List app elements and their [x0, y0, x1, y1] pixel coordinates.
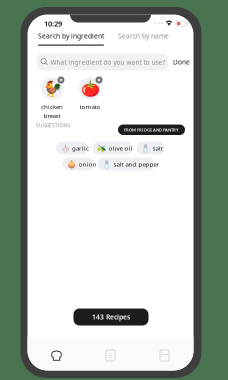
staticText: 🧂 [102, 160, 111, 168]
staticText: 143 Recipes [92, 312, 130, 322]
staticText: What ingredient do you want to use? [50, 58, 165, 66]
staticText: olive oil [108, 144, 132, 152]
staticText: Search by name [118, 31, 169, 41]
staticText: 🍅 [80, 79, 99, 97]
button[interactable]: 🧂 [99, 157, 157, 170]
button[interactable]: 🧂 [136, 141, 164, 154]
staticText: 🧅 [67, 160, 76, 168]
staticText: 🐓 [42, 79, 61, 97]
staticText: Search by ingredient [38, 31, 104, 41]
staticText: salt and pepper [113, 160, 159, 168]
button[interactable]: Recipes [51, 350, 62, 361]
button[interactable]: 🧄 [56, 141, 88, 154]
button[interactable]: 🐓 [39, 77, 69, 115]
staticText: breast [43, 111, 60, 120]
staticText: Done [173, 58, 190, 66]
button[interactable]: 🧅 [63, 157, 95, 170]
staticText: onion [78, 160, 96, 168]
staticText: tomato [79, 102, 100, 111]
staticText: chicken [41, 102, 63, 111]
button[interactable]: 🫒 [92, 141, 132, 154]
button[interactable]: FROM FRIDGE AND PANTRY [118, 124, 185, 135]
button[interactable]: Shopping list [105, 350, 115, 361]
staticText: 10:29 [44, 18, 62, 29]
button[interactable]: Search by name [113, 31, 173, 40]
staticText: 🫒 [97, 144, 106, 152]
button[interactable]: Search by ingredient [38, 31, 104, 40]
staticText: SUGGESTIONS [36, 122, 71, 129]
button[interactable]: Fridge [159, 350, 169, 361]
staticText: FROM FRIDGE AND PANTRY [124, 127, 179, 133]
button[interactable]: Done [171, 53, 191, 70]
staticText: salt [152, 144, 162, 152]
button[interactable]: 🍅 [77, 77, 107, 115]
staticText: garlic [72, 144, 89, 152]
button[interactable]: 143 Recipes [73, 308, 148, 325]
staticText: 🧄 [60, 144, 69, 152]
staticText: 🧂 [141, 144, 150, 152]
